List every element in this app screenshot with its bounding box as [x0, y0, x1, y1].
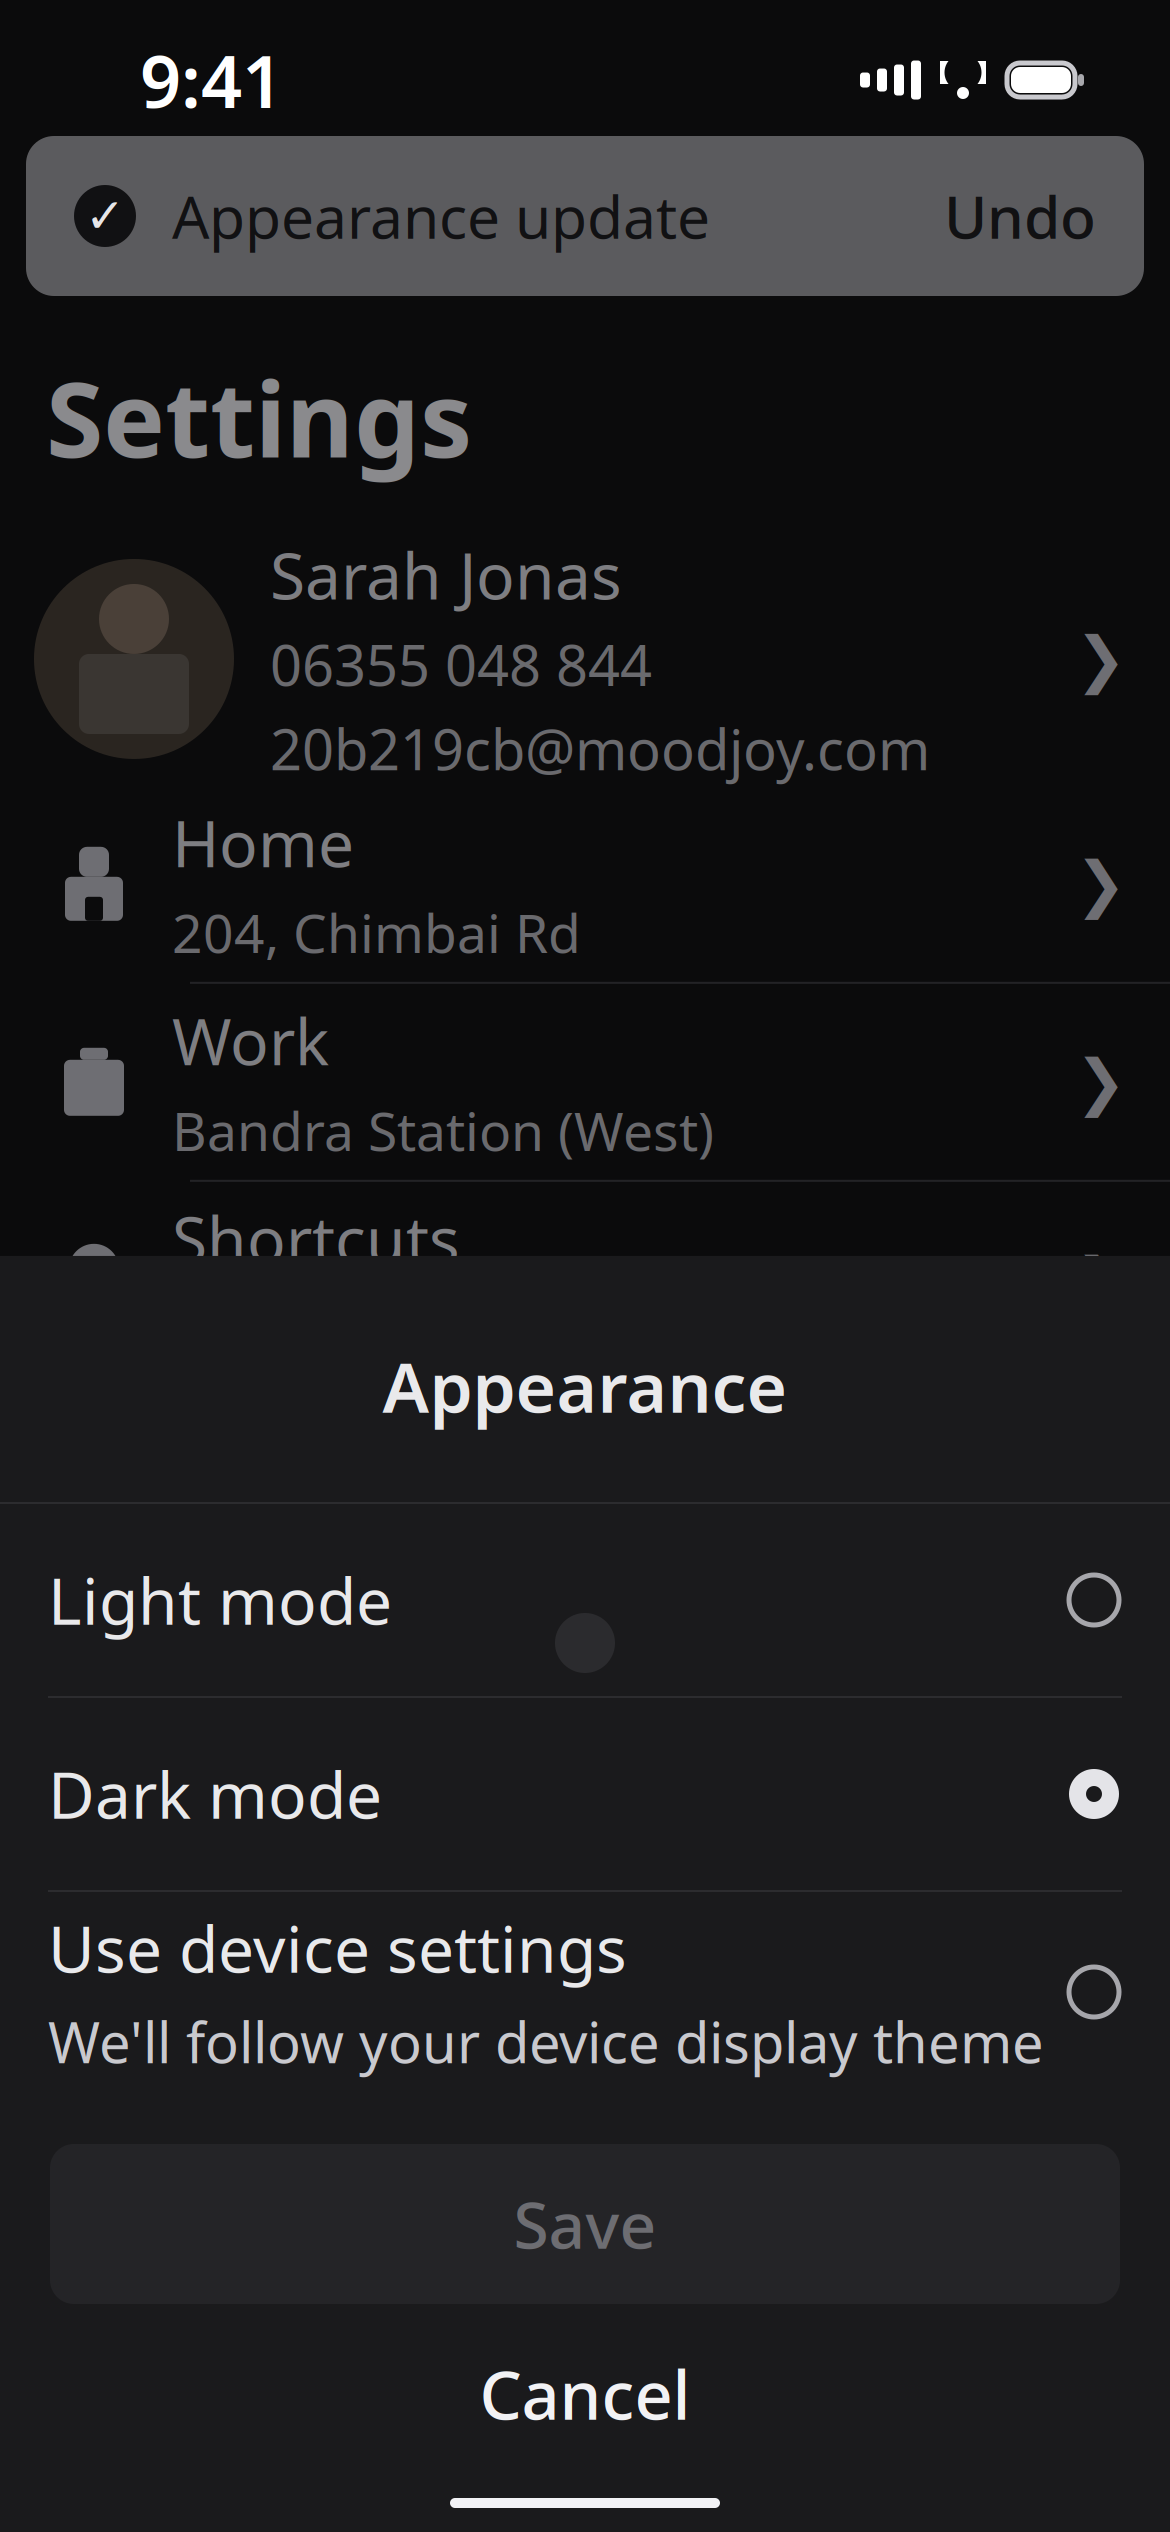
staticText: Cancel	[479, 2350, 690, 2438]
staticText: Undo	[944, 177, 1096, 255]
staticText: ✓	[85, 189, 125, 243]
staticText: ❯	[1075, 1245, 1126, 1315]
staticText: Appearance	[382, 1340, 787, 1432]
staticText: ❯	[1075, 849, 1126, 919]
staticText: ❯	[1075, 1047, 1126, 1117]
staticText: We'll follow your device display theme	[48, 2004, 1044, 2079]
button[interactable]: Light mode	[0, 1504, 1170, 1696]
staticText: Light mode	[48, 1557, 392, 1642]
button[interactable]: Shortcuts	[0, 1182, 1170, 1378]
staticText: Settings	[46, 348, 472, 486]
button[interactable]: Use device settings	[0, 1892, 1170, 2092]
staticText: Dark mode	[48, 1751, 382, 1836]
staticText: Shortcuts	[172, 1196, 460, 1281]
staticText: Use device settings	[48, 1905, 627, 1990]
staticText: Save	[513, 2181, 656, 2266]
button[interactable]: Sarah Jonas	[0, 532, 1170, 786]
button[interactable]: Work	[0, 984, 1170, 1180]
button[interactable]: Home	[0, 786, 1170, 982]
staticText: Sarah Jonas	[270, 532, 622, 617]
staticText: 20b219cb@moodjoy.com	[270, 711, 930, 786]
button[interactable]: Dark mode	[0, 1698, 1170, 1890]
staticText: Work	[172, 998, 329, 1083]
staticText: 9:41	[140, 32, 283, 128]
staticText: 06355 048 844	[270, 627, 652, 701]
staticText: ❯	[1075, 624, 1126, 694]
staticText: Bandra Station (West)	[172, 1095, 714, 1166]
staticText: Appearance update	[172, 177, 710, 255]
button[interactable]: Save	[50, 2144, 1120, 2304]
staticText: Home	[172, 800, 354, 885]
button[interactable]: ✓	[26, 136, 1144, 296]
button[interactable]: Cancel	[0, 2334, 1170, 2454]
staticText: 204, Chimbai Rd	[172, 897, 581, 968]
